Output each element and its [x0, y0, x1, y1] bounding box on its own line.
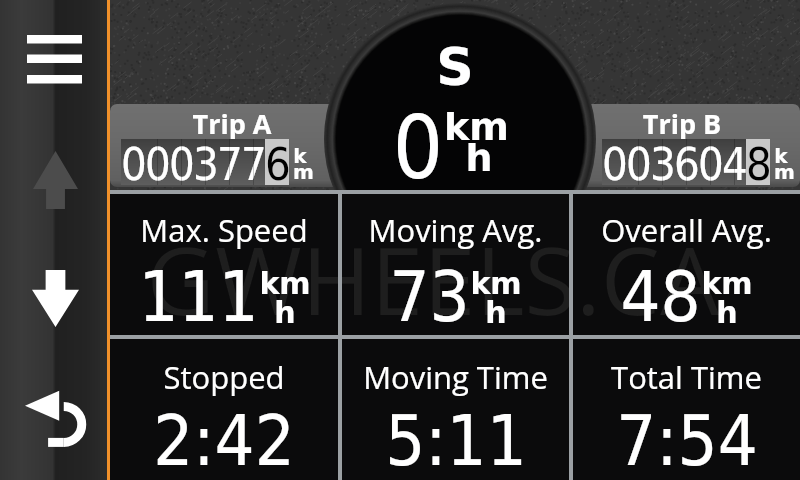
staticText: h [485, 295, 507, 330]
staticText: 0 [626, 138, 650, 184]
staticText: Total Time [573, 356, 800, 398]
staticText: 6 [265, 138, 289, 184]
staticText: 7 [241, 138, 265, 184]
staticText: Stopped [110, 356, 338, 398]
staticText: S [415, 37, 495, 98]
staticText: km [444, 105, 524, 149]
staticText: 2:42 [153, 400, 295, 480]
staticText: 0 [392, 96, 444, 198]
staticText: 0 [602, 138, 626, 184]
staticText: 73 [389, 256, 470, 337]
staticText: Moving Time [342, 356, 569, 398]
button[interactable]: Total Time [573, 339, 800, 480]
staticText: 7 [217, 138, 241, 184]
staticText: km [259, 266, 311, 301]
staticText: 3 [193, 138, 217, 184]
staticText: m [774, 160, 795, 183]
button[interactable]: Scroll down [32, 270, 79, 327]
staticText: km [701, 266, 753, 301]
staticText: 7:54 [616, 400, 758, 480]
staticText: Max. Speed [110, 209, 338, 251]
button[interactable]: Max. Speed [110, 194, 338, 335]
staticText: 3 [650, 138, 674, 184]
staticText: k [293, 144, 307, 167]
staticText: km [470, 266, 522, 301]
staticText: 0 [698, 138, 722, 184]
button[interactable] [550, 104, 800, 187]
staticText: Trip B [622, 105, 742, 142]
staticText: h [444, 136, 514, 180]
staticText: 4 [722, 138, 746, 184]
staticText: h [274, 295, 296, 330]
button[interactable]: Stopped [110, 339, 338, 480]
staticText: 0 [145, 138, 169, 184]
staticText: Overall Avg. [573, 209, 800, 251]
staticText: h [716, 295, 738, 330]
staticText: 48 [620, 256, 701, 337]
button[interactable]: Menu [23, 30, 86, 88]
staticText: 5:11 [385, 400, 527, 480]
button[interactable] [110, 104, 360, 187]
staticText: 0 [169, 138, 193, 184]
staticText: m [293, 160, 314, 183]
staticText: 8 [746, 138, 770, 184]
staticText: k [774, 144, 788, 167]
staticText: 111 [138, 256, 259, 337]
staticText: 6 [674, 138, 698, 184]
button[interactable]: Scroll up [33, 151, 78, 209]
button[interactable]: Overall Avg. [573, 194, 800, 335]
staticText: Moving Avg. [342, 209, 569, 251]
button[interactable]: Moving Avg. [342, 194, 569, 335]
staticText: Trip A [172, 105, 292, 142]
button[interactable]: Back [18, 385, 92, 455]
staticText: GWHEELS.CA [103, 215, 763, 343]
staticText: 0 [121, 138, 145, 184]
button[interactable]: Moving Time [342, 339, 569, 480]
